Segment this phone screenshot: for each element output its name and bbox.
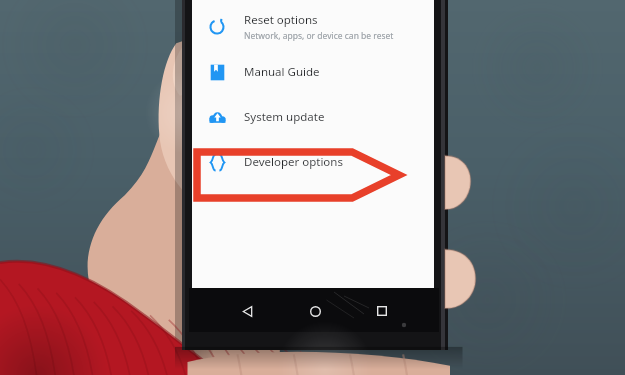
staticText: Reset options <box>244 12 318 28</box>
button[interactable]: Developer options <box>192 139 434 184</box>
button[interactable]: Recent apps <box>372 301 392 321</box>
button[interactable]: Home <box>305 301 325 321</box>
button[interactable]: Back <box>237 301 257 321</box>
staticText: Manual Guide <box>244 64 320 80</box>
staticText: Network, apps, or device can be reset <box>244 30 394 42</box>
other: Developer options <box>208 153 227 172</box>
other: Reset options <box>208 18 226 36</box>
other: System update <box>208 108 227 127</box>
button[interactable]: Manual Guide <box>192 49 434 94</box>
staticText: Developer options <box>244 154 343 170</box>
button[interactable]: System update <box>192 94 434 139</box>
other: Manual Guide <box>209 64 226 81</box>
staticText: System update <box>244 109 325 125</box>
button[interactable]: Reset options <box>192 4 434 49</box>
